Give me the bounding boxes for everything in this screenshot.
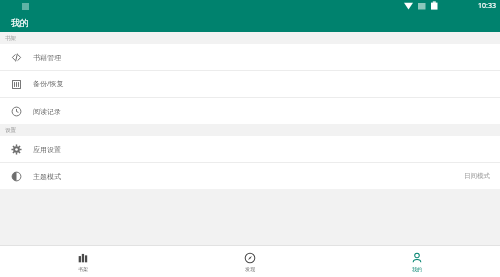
staticText: 书籍管理 xyxy=(33,53,61,62)
staticText: 书架 xyxy=(78,266,88,272)
button[interactable]: 主题模式 xyxy=(0,163,500,189)
staticText: 应用设置 xyxy=(33,145,61,154)
staticText: 10:33 xyxy=(478,1,496,11)
button[interactable]: 书籍管理 xyxy=(0,44,500,70)
button[interactable]: 我的 xyxy=(333,252,500,272)
staticText: 书架 xyxy=(5,35,16,42)
other: 备份恢复 xyxy=(11,79,22,90)
staticText: 发现 xyxy=(245,266,255,272)
button[interactable]: 阅读记录 xyxy=(0,98,500,124)
staticText: 阅读记录 xyxy=(33,107,61,116)
staticText: 日间模式 xyxy=(464,172,490,180)
other: 书籍管理 xyxy=(11,52,22,63)
button[interactable]: 发现 xyxy=(166,252,333,272)
button[interactable]: 备份恢复 xyxy=(0,71,500,97)
button[interactable]: 应用设置 xyxy=(0,136,500,162)
other: 主题模式 xyxy=(11,171,22,182)
staticText: 我的 xyxy=(412,266,422,272)
staticText: 备份/恢复 xyxy=(33,79,64,89)
staticText: 设置 xyxy=(5,127,16,134)
staticText: 我的 xyxy=(11,17,29,28)
button[interactable]: 书架 xyxy=(0,252,166,272)
other: 应用设置 xyxy=(11,144,22,155)
staticText: 主题模式 xyxy=(33,172,61,181)
other: 阅读记录 xyxy=(11,106,22,117)
